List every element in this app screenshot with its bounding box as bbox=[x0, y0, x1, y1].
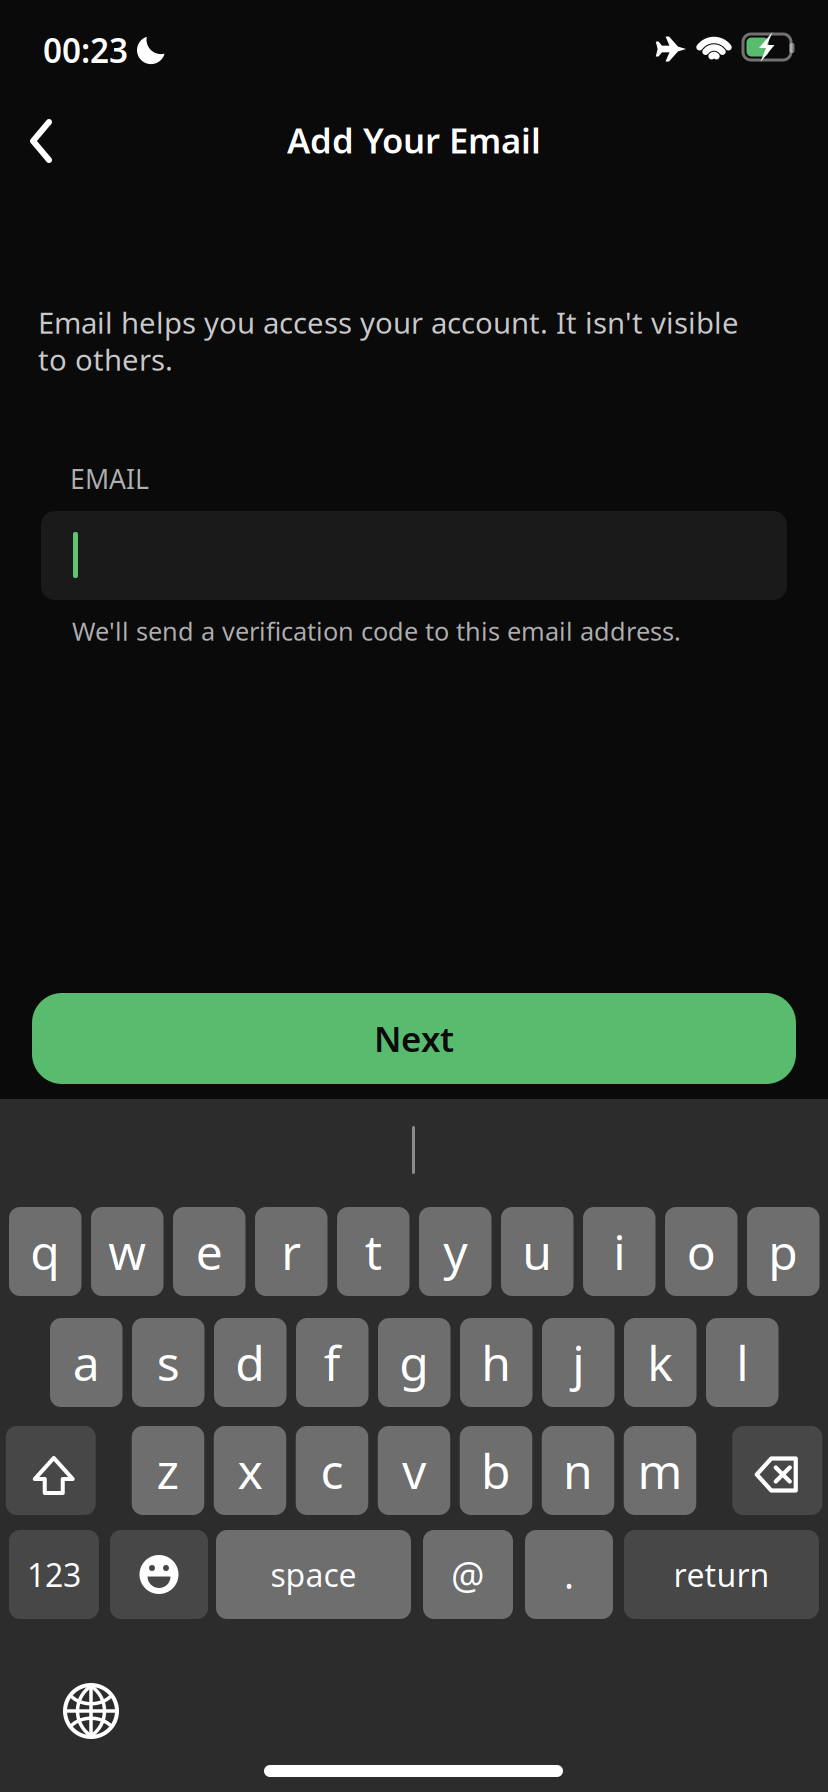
button[interactable]: h bbox=[460, 1318, 532, 1407]
staticText: t bbox=[365, 1220, 382, 1283]
staticText: space bbox=[270, 1553, 356, 1596]
button[interactable]: Shift bbox=[6, 1426, 96, 1515]
staticText: 00:23 bbox=[43, 28, 128, 72]
button[interactable]: t bbox=[337, 1207, 409, 1296]
staticText: i bbox=[613, 1220, 625, 1283]
staticText: b bbox=[481, 1439, 511, 1502]
staticText: j bbox=[572, 1331, 584, 1394]
button[interactable]: . bbox=[525, 1530, 613, 1619]
staticText: c bbox=[320, 1439, 343, 1502]
staticText: m bbox=[637, 1439, 682, 1502]
staticText: n bbox=[563, 1439, 593, 1502]
staticText: Add Your Email bbox=[287, 117, 541, 163]
button[interactable]: z bbox=[132, 1426, 204, 1515]
button[interactable]: w bbox=[91, 1207, 163, 1296]
staticText: v bbox=[402, 1439, 426, 1502]
staticText: return bbox=[673, 1553, 769, 1596]
staticText: k bbox=[647, 1331, 673, 1394]
button[interactable]: Back bbox=[10, 97, 72, 185]
staticText: p bbox=[768, 1220, 798, 1283]
button[interactable]: s bbox=[132, 1318, 204, 1407]
button[interactable]: q bbox=[9, 1207, 81, 1296]
button[interactable]: return bbox=[624, 1530, 819, 1619]
staticText: z bbox=[156, 1439, 179, 1502]
button[interactable]: Change keyboard bbox=[47, 1667, 135, 1755]
staticText: 123 bbox=[27, 1553, 81, 1596]
staticText: x bbox=[237, 1439, 262, 1502]
staticText: g bbox=[399, 1331, 429, 1394]
button[interactable]: m bbox=[624, 1426, 696, 1515]
staticText: s bbox=[157, 1331, 180, 1394]
button[interactable]: g bbox=[378, 1318, 450, 1407]
button[interactable]: j bbox=[542, 1318, 614, 1407]
staticText: e bbox=[196, 1220, 223, 1283]
staticText: Email helps you access your account. It … bbox=[38, 303, 739, 379]
staticText: a bbox=[73, 1331, 100, 1394]
button[interactable]: k bbox=[624, 1318, 696, 1407]
button[interactable]: Delete bbox=[732, 1426, 822, 1515]
button[interactable]: x bbox=[214, 1426, 286, 1515]
staticText: o bbox=[687, 1220, 716, 1283]
button[interactable]: r bbox=[255, 1207, 327, 1296]
button[interactable]: space bbox=[216, 1530, 411, 1619]
staticText: w bbox=[108, 1220, 146, 1283]
button[interactable]: u bbox=[501, 1207, 573, 1296]
button[interactable]: c bbox=[296, 1426, 368, 1515]
staticText: u bbox=[522, 1220, 552, 1283]
button[interactable]: e bbox=[173, 1207, 245, 1296]
staticText: We'll send a verification code to this e… bbox=[72, 614, 681, 648]
button[interactable]: l bbox=[706, 1318, 778, 1407]
staticText: f bbox=[324, 1331, 341, 1394]
button[interactable]: b bbox=[460, 1426, 532, 1515]
staticText: EMAIL bbox=[70, 461, 149, 496]
staticText: l bbox=[736, 1331, 748, 1394]
button[interactable]: n bbox=[542, 1426, 614, 1515]
button[interactable]: Emoji bbox=[110, 1530, 208, 1619]
button[interactable]: o bbox=[665, 1207, 737, 1296]
button[interactable]: p bbox=[747, 1207, 819, 1296]
button[interactable]: 123 bbox=[9, 1530, 99, 1619]
button[interactable]: @ bbox=[423, 1530, 513, 1619]
button[interactable]: d bbox=[214, 1318, 286, 1407]
staticText: @ bbox=[451, 1550, 485, 1599]
staticText: q bbox=[30, 1220, 60, 1283]
button[interactable]: i bbox=[583, 1207, 655, 1296]
button[interactable]: y bbox=[419, 1207, 491, 1296]
staticText: . bbox=[564, 1550, 574, 1599]
staticText: r bbox=[281, 1220, 301, 1283]
staticText: h bbox=[481, 1331, 511, 1394]
staticText: d bbox=[235, 1331, 265, 1394]
button[interactable]: f bbox=[296, 1318, 368, 1407]
staticText: Next bbox=[374, 1015, 454, 1061]
staticText: y bbox=[443, 1220, 467, 1283]
button[interactable]: Next bbox=[32, 993, 796, 1084]
button[interactable]: a bbox=[50, 1318, 122, 1407]
button[interactable]: v bbox=[378, 1426, 450, 1515]
